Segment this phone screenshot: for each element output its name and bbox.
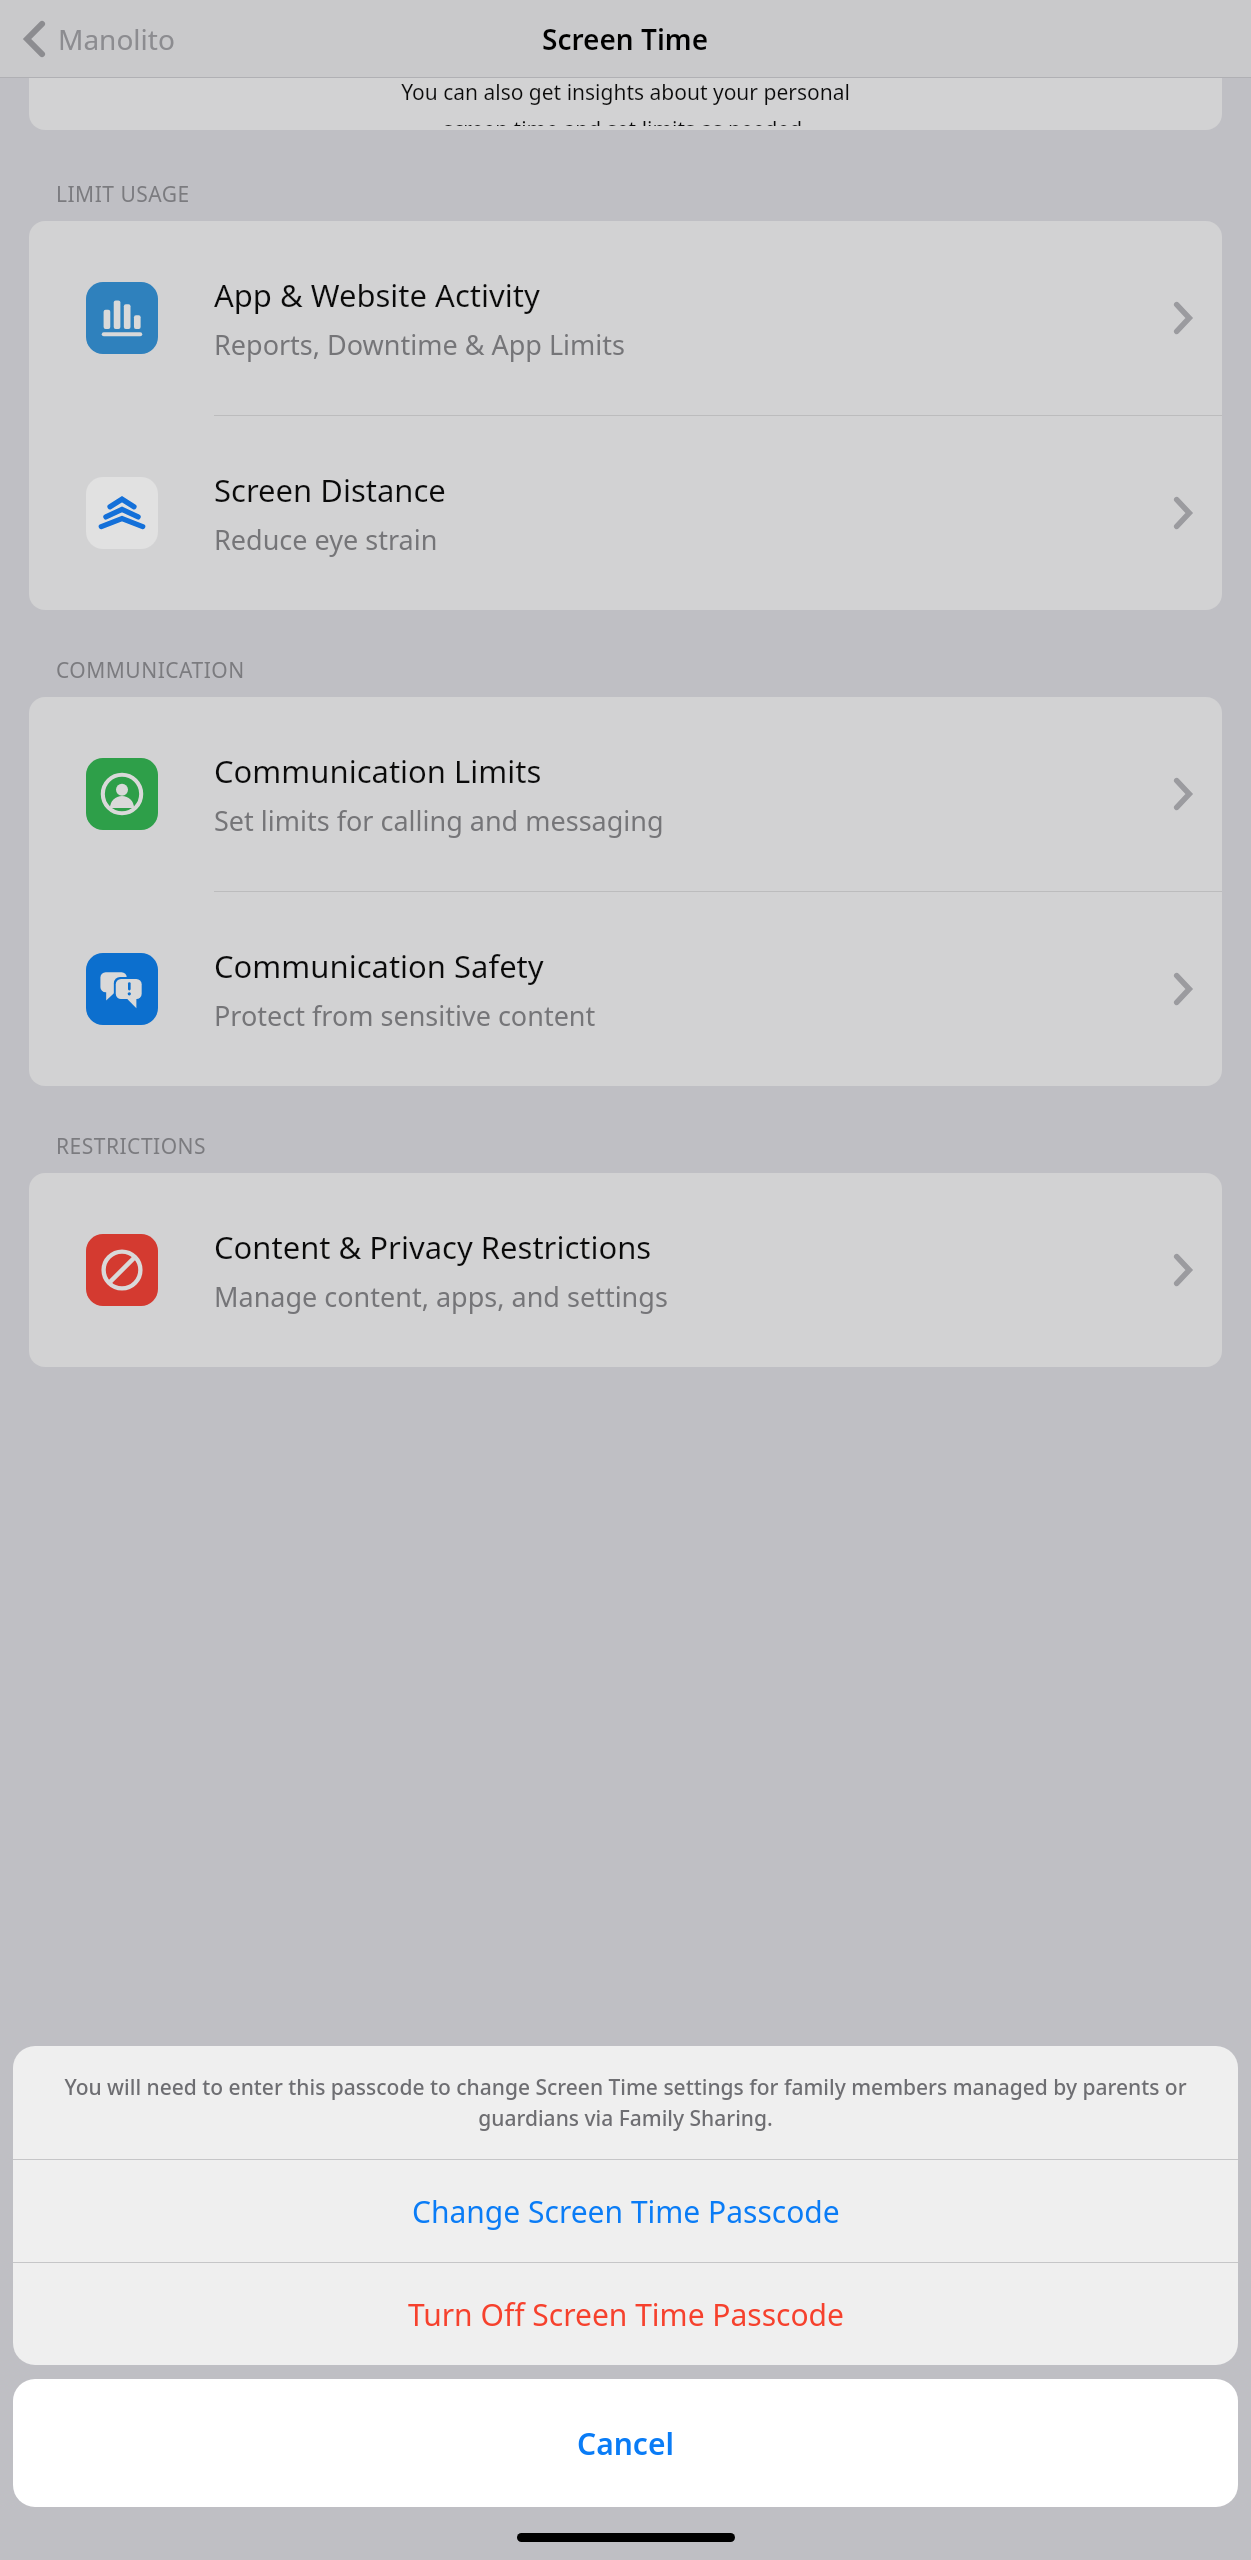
staticText: Content & Privacy Restrictions [214, 1226, 652, 1268]
staticText: RESTRICTIONS [56, 1132, 207, 1161]
staticText: App & Website Activity [214, 274, 540, 316]
staticText: Set limits for calling and messaging [214, 802, 664, 839]
button[interactable]: App & Website Activity [29, 221, 1222, 415]
other: Open App & Website Activity [1174, 302, 1192, 334]
button[interactable]: Communication Limits [29, 697, 1222, 891]
staticText: Manolito [58, 20, 175, 58]
staticText: Turn Off Screen Time Passcode [408, 2294, 844, 2335]
button[interactable]: Change Screen Time Passcode [13, 2160, 1238, 2262]
other: Open Content & Privacy Restrictions [1174, 1254, 1192, 1286]
staticText: Change Screen Time Passcode [412, 2191, 840, 2232]
staticText: Screen Distance [214, 469, 446, 511]
staticText: screen time and set limits as needed. [443, 115, 808, 126]
other: Open Communication Safety [1174, 973, 1192, 1005]
button[interactable]: Cancel [13, 2379, 1238, 2507]
staticText: Manage content, apps, and settings [214, 1278, 668, 1315]
staticText: Communication Limits [214, 750, 542, 792]
button[interactable]: Screen Distance [29, 416, 1222, 610]
staticText: Communication Safety [214, 945, 544, 987]
staticText: You can also get insights about your per… [401, 78, 850, 107]
staticText: Cancel [577, 2423, 674, 2464]
other: Open Screen Distance [1174, 497, 1192, 529]
staticText: Screen Time [542, 20, 709, 58]
other: Open Communication Limits [1174, 778, 1192, 810]
button[interactable]: Content & Privacy Restrictions [29, 1173, 1222, 1367]
button[interactable]: Turn Off Screen Time Passcode [13, 2263, 1238, 2365]
staticText: LIMIT USAGE [56, 180, 190, 209]
staticText: Reports, Downtime & App Limits [214, 326, 625, 363]
staticText: Reduce eye strain [214, 521, 438, 558]
staticText: You will need to enter this passcode to … [43, 2073, 1208, 2132]
button[interactable]: Communication Safety [29, 892, 1222, 1086]
staticText: Protect from sensitive content [214, 997, 596, 1034]
button[interactable]: Manolito [20, 12, 179, 66]
staticText: COMMUNICATION [56, 656, 245, 685]
